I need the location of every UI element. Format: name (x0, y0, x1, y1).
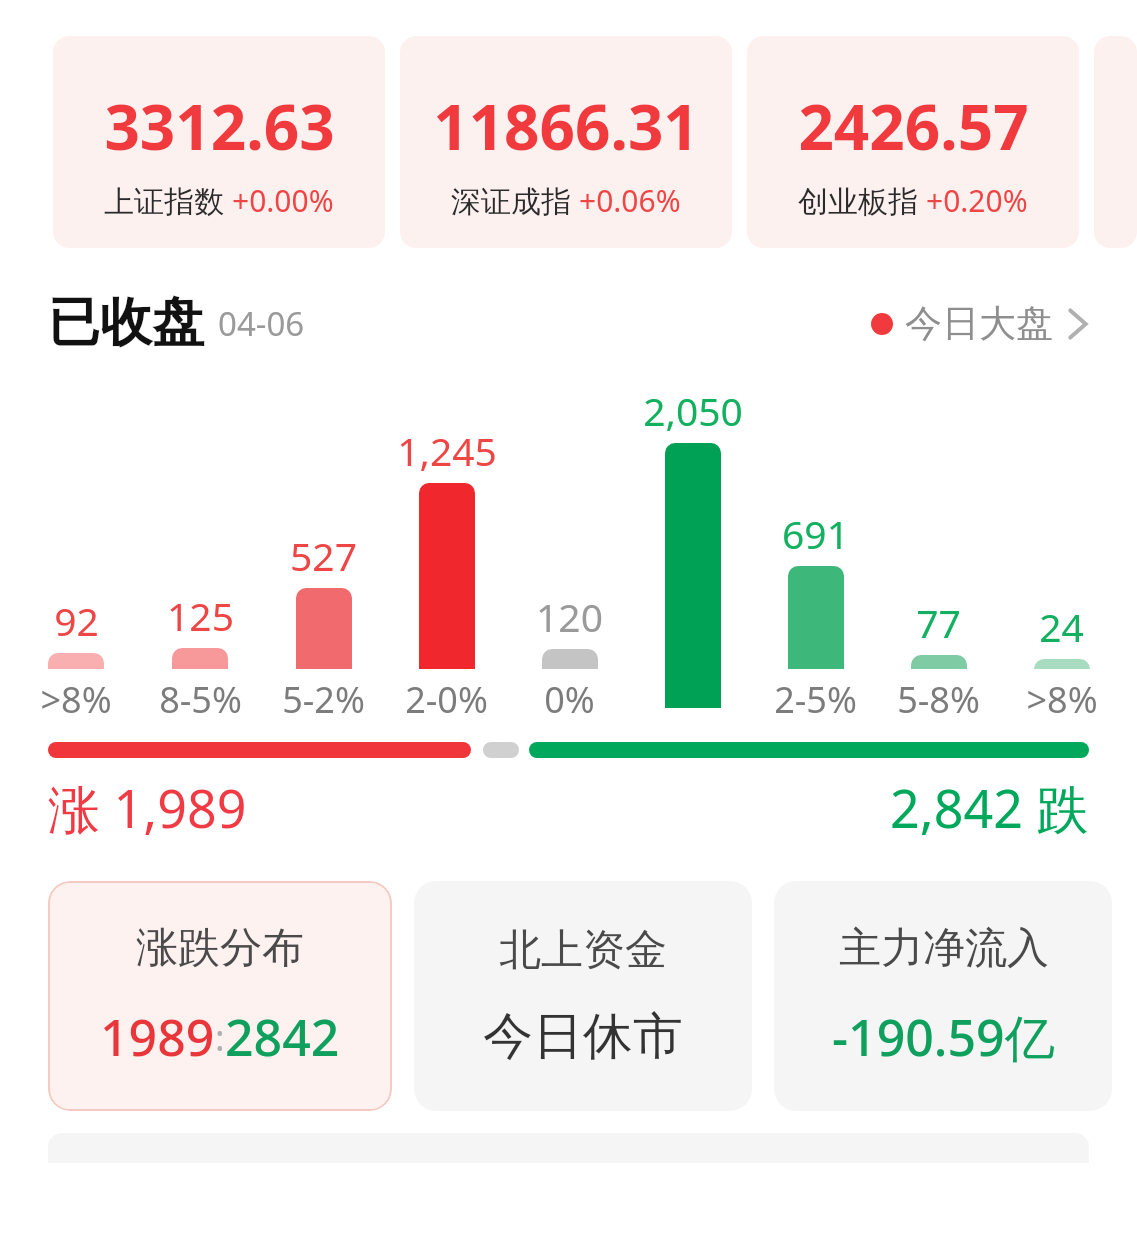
staticText: 北上资金 (499, 924, 667, 977)
staticText: 2,842 跌 (890, 772, 1089, 843)
staticText: 3312.63 (104, 84, 335, 168)
staticText: +0.20% (926, 180, 1028, 221)
staticText: >8% (1026, 675, 1098, 724)
staticText: 691 (782, 507, 849, 560)
staticText: 2-0% (405, 675, 488, 724)
staticText: 0% (544, 675, 595, 724)
button[interactable]: 92 (14, 594, 138, 724)
staticText: 24 (1039, 600, 1084, 653)
button[interactable]: 涨跌分布 (48, 881, 392, 1111)
button[interactable]: 11866.31 (400, 36, 732, 248)
staticText: 2-5% (774, 675, 857, 724)
staticText: 5-2% (282, 675, 365, 724)
staticText: 涨跌分布 (136, 922, 304, 975)
staticText: 今日大盘 (905, 300, 1053, 347)
other: 更多 (1067, 307, 1089, 341)
staticText: 今日休市 (483, 1005, 683, 1068)
button[interactable]: 2426.57 (747, 36, 1079, 248)
staticText: 92 (54, 594, 99, 647)
button[interactable]: 24 (1000, 600, 1123, 724)
staticText: 2,050 (643, 384, 743, 437)
button[interactable]: 1,245 (385, 424, 508, 724)
button[interactable]: 77 (877, 596, 1000, 724)
staticText: 深证成指 (451, 183, 571, 221)
staticText: 2842 (225, 1003, 340, 1071)
staticText: 8-5% (159, 675, 242, 724)
button[interactable]: 691 (754, 507, 877, 724)
staticText: -190.59亿 (832, 1003, 1055, 1071)
button[interactable]: 3312.63 (53, 36, 385, 248)
staticText: 上证指数 (104, 183, 224, 221)
staticText: +0.06% (579, 180, 681, 221)
staticText: 主力净流入 (839, 922, 1049, 975)
staticText: 125 (167, 589, 234, 642)
staticText: 1989 (100, 1003, 215, 1071)
staticText: 11866.31 (433, 84, 699, 168)
button[interactable]: 2,050 (631, 384, 754, 724)
button[interactable]: 北上资金 (414, 881, 752, 1111)
button[interactable]: 主力净流入 (774, 881, 1112, 1111)
staticText: >8% (40, 675, 112, 724)
staticText: 527 (290, 529, 357, 582)
button[interactable]: 125 (138, 589, 262, 724)
staticText: 2426.57 (798, 84, 1029, 168)
staticText: 涨 1,989 (48, 772, 247, 843)
staticText: 77 (916, 596, 961, 649)
staticText: 04-06 (218, 301, 305, 346)
staticText: 120 (536, 590, 603, 643)
staticText: : (215, 1013, 225, 1062)
button[interactable]: 527 (262, 529, 385, 724)
button[interactable]: 120 (508, 590, 631, 724)
staticText: 5-8% (897, 675, 980, 724)
staticText: +0.00% (232, 180, 334, 221)
staticText: 已收盘 (48, 290, 204, 356)
button[interactable]: 今日大盘 (871, 300, 1089, 347)
staticText: 1,245 (397, 424, 497, 477)
staticText: 创业板指 (798, 183, 918, 221)
